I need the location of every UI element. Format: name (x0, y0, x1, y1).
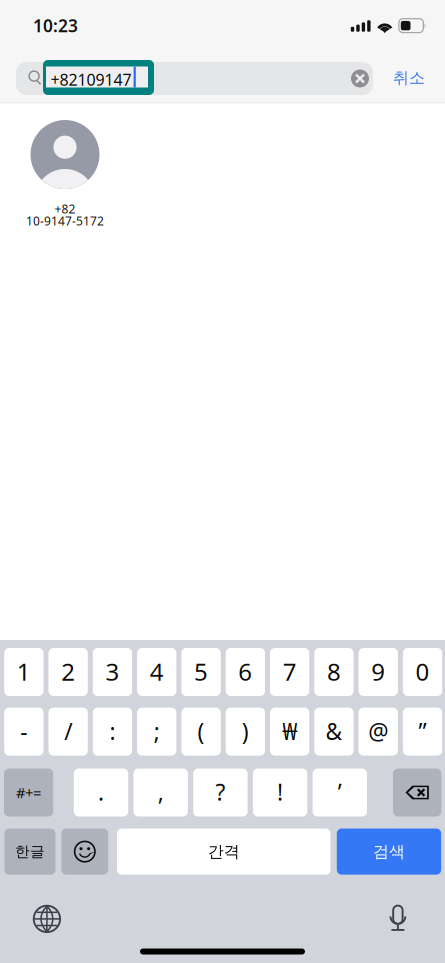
button[interactable]: 검색 (337, 828, 441, 875)
button[interactable]: Clear text (345, 62, 375, 95)
button[interactable]: . (74, 768, 128, 816)
button[interactable]: 7 (270, 648, 309, 696)
button[interactable]: 취소 (381, 56, 437, 100)
staticText: 검색 (373, 842, 405, 861)
staticText: 7 (283, 656, 297, 687)
staticText: ” (418, 716, 426, 746)
staticText: 1 (17, 656, 31, 687)
staticText: 6 (238, 656, 252, 687)
button[interactable]: 9 (359, 648, 398, 696)
button[interactable]: ” (403, 708, 442, 756)
button[interactable]: 1 (4, 648, 43, 696)
staticText: 10:23 (33, 14, 78, 37)
staticText: 3 (105, 656, 119, 687)
staticText: , (158, 777, 164, 807)
button[interactable]: 0 (403, 648, 442, 696)
staticText: ) (242, 716, 249, 746)
staticText: 취소 (393, 68, 425, 88)
button[interactable]: 6 (226, 648, 265, 696)
button[interactable]: 간격 (117, 828, 330, 875)
staticText: ; (154, 716, 160, 746)
staticText: 9 (371, 656, 385, 687)
staticText: . (98, 777, 104, 807)
button[interactable]: Backspace (393, 768, 441, 816)
button[interactable]: ! (253, 768, 307, 816)
button[interactable]: #+= (4, 768, 53, 816)
staticText: ₩ (282, 716, 297, 746)
staticText: ! (277, 777, 283, 807)
staticText: & (325, 716, 342, 746)
staticText: 0 (415, 656, 429, 687)
button[interactable]: @ (359, 708, 398, 756)
button[interactable]: ₩ (270, 708, 309, 756)
staticText: : (109, 716, 115, 746)
button[interactable]: ? (193, 768, 248, 816)
button[interactable]: / (48, 708, 88, 756)
staticText: 5 (194, 656, 208, 687)
button[interactable]: 한글 (4, 828, 55, 875)
staticText: ( (197, 716, 204, 746)
staticText: 간격 (208, 842, 240, 861)
staticText: - (20, 716, 27, 746)
button[interactable]: ; (137, 708, 176, 756)
button[interactable]: & (314, 708, 354, 756)
staticText: #+= (16, 783, 41, 802)
button[interactable]: 5 (181, 648, 221, 696)
button[interactable]: Dictation (386, 905, 410, 931)
staticText: ’ (338, 777, 342, 807)
staticText: 2 (61, 656, 75, 687)
staticText: @ (368, 716, 388, 746)
staticText: +82 (54, 201, 75, 217)
staticText: ? (215, 777, 225, 807)
button[interactable]: 2 (48, 648, 88, 696)
button[interactable]: 8 (314, 648, 354, 696)
button[interactable]: ( (181, 708, 221, 756)
button[interactable]: 3 (93, 648, 132, 696)
button[interactable]: - (4, 708, 43, 756)
button[interactable]: , (133, 768, 188, 816)
button[interactable]: 4 (137, 648, 176, 696)
button[interactable]: ’ (313, 768, 367, 816)
staticText: 8 (327, 656, 341, 687)
staticText: 4 (150, 656, 164, 687)
button[interactable]: ) (226, 708, 265, 756)
staticText: 한글 (15, 843, 45, 861)
button[interactable]: : (93, 708, 132, 756)
staticText: 10-9147-5172 (26, 213, 104, 229)
button[interactable]: +82 (17, 120, 113, 229)
button[interactable]: Emoji keyboard (61, 828, 108, 875)
staticText: / (64, 716, 72, 746)
button[interactable]: Next keyboard (32, 904, 61, 933)
staticText: +82109147 (50, 69, 131, 90)
